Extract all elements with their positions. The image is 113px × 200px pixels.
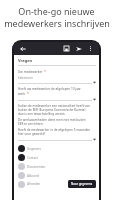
- staticText: *: [27, 91, 29, 96]
- staticText: *: [44, 69, 46, 74]
- staticText: Documenten: [27, 165, 46, 169]
- button[interactable]: Versturen: [74, 44, 83, 53]
- staticText: Indien de medewerker een nationaliteit h…: [18, 104, 90, 108]
- staticText: Afronden: [27, 182, 41, 186]
- button[interactable]: [18, 98, 96, 101]
- button[interactable]: Contact: [18, 153, 96, 162]
- staticText: medewerkers inschrijven: [4, 17, 110, 29]
- staticText: Heeft de medewerker in de afgelopen 5 ma…: [18, 128, 91, 132]
- button[interactable]: Meer opties: [86, 44, 95, 53]
- staticText: EER te verrichten.: [18, 122, 44, 126]
- staticText: hier voor gewerkt?: [18, 132, 46, 136]
- button[interactable]: [18, 81, 96, 84]
- button[interactable]: Akkoord: [18, 171, 96, 180]
- staticText: buiten de EER (Europese Economische Ruim…: [18, 108, 86, 112]
- staticText: Contact: [27, 156, 38, 160]
- button[interactable]: Naar gegevens: [68, 180, 96, 188]
- button[interactable]: Documenten: [18, 162, 96, 171]
- staticText: Naar gegevens: [71, 182, 93, 186]
- button[interactable]: Terug: [18, 44, 27, 53]
- staticText: On-the-go nieuwe: [18, 5, 95, 17]
- staticText: Vragen: [18, 58, 33, 63]
- staticText: Heeft uw medewerker de afgelopen 10 jaar: [18, 87, 81, 91]
- staticText: Akkoord: [27, 174, 39, 178]
- button[interactable]: [18, 138, 96, 141]
- staticText: werk: [18, 92, 26, 96]
- staticText: Selecteren: [18, 76, 33, 80]
- staticText: dan is een tewerkstelling vereist.: [18, 112, 66, 116]
- button[interactable]: Opslaan: [62, 44, 71, 53]
- staticText: Uw medewerker: [18, 70, 43, 74]
- staticText: De werkzaamheden dient men niet met buit…: [18, 118, 86, 122]
- staticText: Gegevens: [27, 147, 41, 151]
- button[interactable]: Gegevens: [18, 144, 96, 153]
